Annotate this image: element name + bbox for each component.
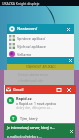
staticText: o Rapid.cz: 1 nová zpráva [16, 101, 56, 106]
button[interactable]: STÁHNOUT APLIKACI [7, 64, 74, 70]
staticText: T [12, 116, 15, 121]
staticText: Rapid.cz [16, 96, 32, 101]
staticText: Je internetový server, který n... [7, 125, 55, 130]
button[interactable]: Vellamo [7, 50, 74, 58]
staticText: Výchozí aplikace [17, 44, 46, 49]
staticText: Nastavení [17, 26, 38, 32]
button[interactable]: Správce aplikací [7, 34, 74, 42]
staticText: Správce aplikací [17, 36, 46, 41]
staticText: R [9, 98, 12, 103]
staticText: dobrý den, děkujeme za... [16, 106, 53, 110]
button[interactable]: Dismiss [68, 128, 74, 134]
button[interactable]: Close recorder [65, 86, 73, 94]
staticText: Toto je ukázka textu [18, 73, 48, 77]
button[interactable]: Stop recording [55, 86, 63, 94]
staticText: Vellamo [17, 52, 32, 57]
button[interactable]: R [4, 95, 75, 110]
staticText: e-mailová schránka s ... [7, 135, 42, 138]
button[interactable]: Close banner [68, 58, 73, 63]
staticText: Gmail [13, 87, 24, 92]
button[interactable]: Je internetový server, který n... [4, 124, 75, 138]
button[interactable]: Nastavení [7, 24, 74, 34]
staticText: v šedém poli zde [18, 79, 43, 83]
staticText: UKAZKA Knight displeje [2, 1, 40, 6]
staticText: STÁHNOUT APLIKACI [26, 65, 56, 69]
staticText: Tým, který [20, 116, 38, 121]
button[interactable]: Výchozí aplikace [7, 42, 74, 50]
button[interactable]: Close settings [64, 25, 73, 34]
button[interactable]: T [4, 114, 75, 123]
